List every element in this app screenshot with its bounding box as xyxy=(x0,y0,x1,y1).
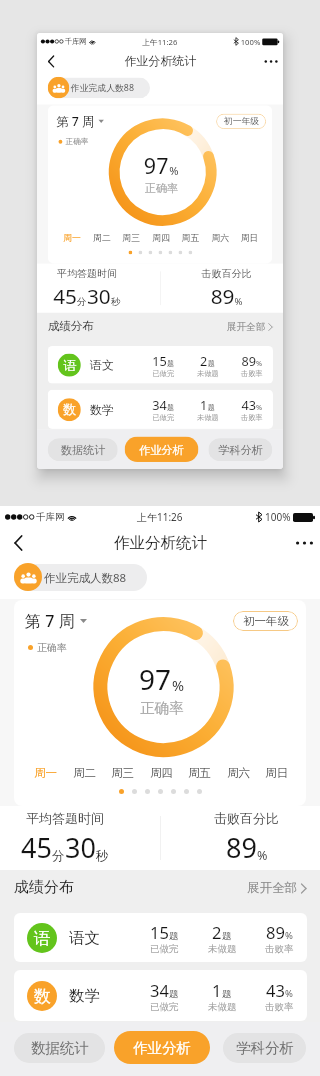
staticText: 周五 xyxy=(181,233,199,244)
button[interactable]: 周三 xyxy=(121,233,141,244)
button[interactable]: 周三 xyxy=(109,766,135,780)
staticText: 学科分析 xyxy=(218,443,263,456)
staticText: 周日 xyxy=(241,233,258,244)
staticText: 数据统计 xyxy=(31,1039,89,1057)
button[interactable]: 数据统计 xyxy=(14,1033,105,1063)
staticText: 数学 xyxy=(90,402,114,417)
button[interactable]: 周六 xyxy=(225,766,251,780)
staticText: 展开全部 xyxy=(247,880,297,896)
button[interactable]: 周一 xyxy=(62,233,82,244)
staticText: 题 xyxy=(208,403,215,413)
staticText: 100% xyxy=(241,36,261,47)
staticText: 周六 xyxy=(227,766,250,780)
button[interactable]: 周五 xyxy=(180,233,200,244)
button[interactable]: More options xyxy=(288,528,320,558)
staticText: 击败率 xyxy=(265,943,294,955)
staticText: 作业完成人数88 xyxy=(71,82,135,94)
button[interactable]: 数 xyxy=(48,390,273,429)
staticText: 语文 xyxy=(69,928,100,948)
button[interactable]: 周六 xyxy=(210,233,230,244)
staticText: 分 xyxy=(77,296,87,308)
button[interactable]: 周日 xyxy=(239,233,259,244)
staticText: 秒 xyxy=(111,296,121,308)
button[interactable]: Back xyxy=(0,528,36,558)
staticText: 周日 xyxy=(265,766,288,780)
staticText: 89 xyxy=(226,829,257,866)
staticText: 题 xyxy=(222,988,232,1000)
button[interactable]: 第 7 周 xyxy=(56,113,104,130)
staticText: 成绩分布 xyxy=(48,319,94,334)
staticText: 数 xyxy=(63,402,76,418)
staticText: 数学 xyxy=(69,986,100,1006)
button[interactable]: 周五 xyxy=(186,766,212,780)
staticText: 34 xyxy=(152,397,167,413)
button[interactable]: More options xyxy=(258,50,283,73)
button[interactable]: 周四 xyxy=(148,766,174,780)
button[interactable]: 学科分析 xyxy=(208,438,272,461)
staticText: 学科分析 xyxy=(236,1039,294,1057)
staticText: 97 xyxy=(144,151,169,181)
staticText: 89 xyxy=(211,281,234,310)
staticText: 千库网 xyxy=(36,511,65,523)
staticText: 语 xyxy=(63,357,76,373)
staticText: 秒 xyxy=(96,848,109,864)
button[interactable]: 作业分析 xyxy=(125,437,198,462)
staticText: 语文 xyxy=(90,357,114,373)
staticText: 第 7 周 xyxy=(56,113,95,130)
staticText: 未做题 xyxy=(197,413,219,423)
staticText: 题 xyxy=(169,930,179,942)
button[interactable]: 语 xyxy=(14,913,307,962)
button[interactable]: 第 7 周 xyxy=(25,610,87,632)
staticText: 题 xyxy=(208,359,215,368)
button[interactable]: 周二 xyxy=(71,766,97,780)
staticText: 已做完 xyxy=(150,943,179,955)
button[interactable]: 语 xyxy=(48,346,273,384)
staticText: 周二 xyxy=(93,233,111,244)
button[interactable]: 作业完成人数88 xyxy=(48,78,150,98)
staticText: 平均答题时间 xyxy=(57,267,117,279)
staticText: 2 xyxy=(200,352,208,369)
button[interactable]: 学科分析 xyxy=(223,1033,306,1063)
staticText: % xyxy=(285,987,293,1000)
staticText: 已做完 xyxy=(152,369,175,378)
button[interactable]: 作业分析 xyxy=(114,1031,210,1064)
button[interactable]: 初一年级 xyxy=(233,611,298,631)
staticText: % xyxy=(257,847,268,864)
staticText: 展开全部 xyxy=(227,320,265,333)
staticText: 千库网 xyxy=(65,37,87,46)
button[interactable]: 初一年级 xyxy=(216,114,266,129)
staticText: 15 xyxy=(150,921,169,943)
button[interactable]: 周一 xyxy=(32,766,58,780)
staticText: 上午11:26 xyxy=(142,36,178,47)
button[interactable]: 展开全部 xyxy=(227,320,272,333)
staticText: 击败百分比 xyxy=(201,267,251,279)
staticText: 周六 xyxy=(211,233,229,244)
staticText: 43 xyxy=(266,979,285,1001)
staticText: 43 xyxy=(241,397,256,413)
staticText: % xyxy=(235,295,243,308)
staticText: 初一年级 xyxy=(224,116,259,127)
button[interactable]: Back xyxy=(37,50,65,73)
staticText: 周二 xyxy=(73,766,96,780)
button[interactable]: 数据统计 xyxy=(48,438,118,461)
button[interactable]: 数 xyxy=(14,970,307,1021)
button[interactable]: 周二 xyxy=(92,233,112,244)
staticText: 击败率 xyxy=(241,413,263,423)
staticText: 击败百分比 xyxy=(214,810,279,826)
staticText: 97 xyxy=(139,660,172,698)
button[interactable]: 展开全部 xyxy=(247,880,306,896)
button[interactable]: 作业完成人数88 xyxy=(14,564,147,591)
staticText: % xyxy=(256,358,262,368)
staticText: 15 xyxy=(152,352,167,369)
staticText: 作业分析统计 xyxy=(114,533,207,553)
staticText: 正确率 xyxy=(37,641,67,654)
button[interactable]: 周四 xyxy=(151,233,171,244)
staticText: 1 xyxy=(212,979,222,1001)
staticText: 30 xyxy=(87,281,111,310)
staticText: 击败率 xyxy=(241,369,263,378)
staticText: 未做题 xyxy=(197,369,219,378)
button[interactable]: 周日 xyxy=(263,766,289,780)
staticText: 击败率 xyxy=(265,1001,294,1013)
staticText: 未做题 xyxy=(208,943,237,955)
staticText: 1 xyxy=(200,397,208,413)
